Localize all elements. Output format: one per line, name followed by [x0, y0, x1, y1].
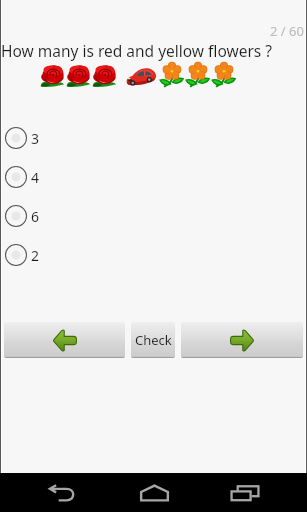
- staticText: 4: [31, 168, 40, 187]
- staticText: 2 / 60: [270, 22, 304, 40]
- staticText: How many is red and yellow flowers ?: [1, 40, 272, 61]
- staticText: 2: [31, 246, 40, 265]
- button[interactable]: Home: [124, 473, 184, 512]
- button[interactable]: Recents: [215, 473, 275, 512]
- button[interactable]: [131, 322, 175, 358]
- button[interactable]: 6: [0, 196, 307, 235]
- staticText: 6: [31, 207, 40, 226]
- button[interactable]: 3: [0, 118, 307, 157]
- staticText: Check: [135, 331, 172, 349]
- staticText: 3: [31, 129, 40, 148]
- button[interactable]: 2: [0, 235, 307, 274]
- other: Previous: [4, 322, 125, 358]
- button[interactable]: 4: [0, 157, 307, 196]
- button[interactable]: [4, 322, 125, 358]
- other: Next: [181, 322, 303, 358]
- button[interactable]: [181, 322, 303, 358]
- button[interactable]: Back: [32, 473, 92, 512]
